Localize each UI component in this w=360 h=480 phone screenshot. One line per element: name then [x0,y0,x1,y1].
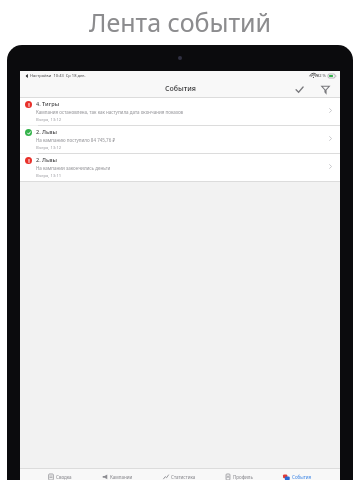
staticText: Вчера, 13:12 [36,117,62,123]
button[interactable]: Статистика [161,469,198,480]
button[interactable]: Фильтр [318,82,332,96]
staticText: Вчера, 13:12 [36,145,62,151]
button[interactable]: 2. Львы [20,154,340,181]
button[interactable]: Профиль [223,469,255,480]
staticText: 2. Львы [36,128,57,135]
staticText: События [165,84,196,94]
button[interactable]: Сводка [46,469,74,480]
staticText: 4. Тигры [36,100,60,107]
staticText: На кампании закончились деньги [36,165,111,171]
staticText: События [292,474,312,480]
button[interactable]: Кампании [100,469,135,480]
staticText: Настройки 10:43 Ср 18 дек. [30,73,86,78]
staticText: Кампания остановлена, так как наступила … [36,109,184,115]
staticText: Кампании [110,474,133,480]
button[interactable]: События [281,469,314,480]
staticText: Лента событий [89,5,272,39]
staticText: Профиль [233,474,253,480]
staticText: Статистика [171,474,196,480]
staticText: 2. Львы [36,156,57,163]
staticText: Вчера, 13:11 [36,173,62,179]
button[interactable]: 2. Львы [20,126,340,153]
staticText: Сводка [56,474,72,480]
staticText: 82 % [317,73,327,78]
staticText: На кампанию поступило 84 745,76 ₽ [36,137,116,143]
button[interactable]: Отметить все прочитанными [292,82,306,96]
button[interactable]: 4. Тигры [20,98,340,125]
